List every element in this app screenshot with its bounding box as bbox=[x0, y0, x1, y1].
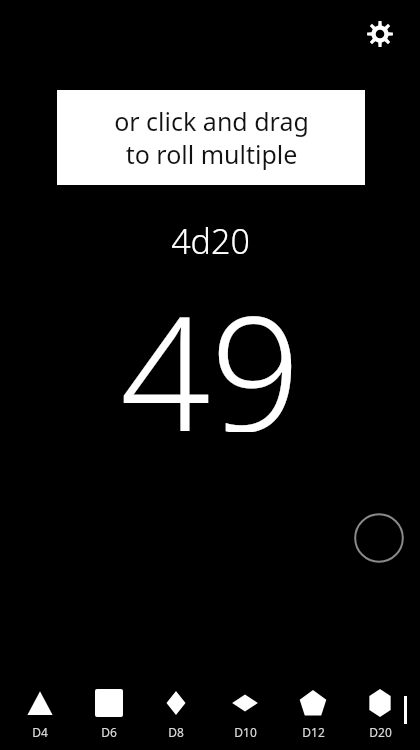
button[interactable]: 49 bbox=[0, 262, 420, 432]
staticText: D4 bbox=[32, 724, 48, 740]
button[interactable]: D10 bbox=[213, 668, 277, 750]
button[interactable]: D12 bbox=[281, 668, 345, 750]
staticText: D6 bbox=[101, 724, 117, 740]
staticText: or click and drag to roll multiple bbox=[114, 104, 309, 171]
button[interactable]: Roll indicator bbox=[352, 511, 406, 565]
staticText: D10 bbox=[234, 724, 257, 740]
button[interactable]: D8 bbox=[144, 668, 208, 750]
button[interactable]: D20 bbox=[348, 668, 412, 750]
button[interactable]: Settings bbox=[356, 10, 404, 58]
staticText: 49 bbox=[120, 262, 301, 432]
button[interactable]: D4 bbox=[8, 668, 72, 750]
staticText: D12 bbox=[302, 724, 325, 740]
button[interactable]: D6 bbox=[77, 668, 141, 750]
button[interactable]: or click and drag to roll multiple bbox=[57, 90, 365, 185]
staticText: D20 bbox=[369, 724, 392, 740]
staticText: 4d20 bbox=[171, 218, 250, 264]
staticText: D8 bbox=[168, 724, 184, 740]
